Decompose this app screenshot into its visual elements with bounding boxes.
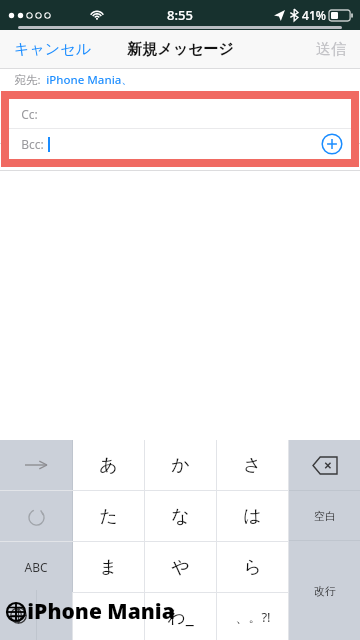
staticText: 41% — [302, 7, 326, 23]
button[interactable]: ABC — [0, 542, 72, 592]
staticText: や — [171, 556, 190, 579]
staticText: 、。?! — [235, 608, 271, 626]
button[interactable]: 、。?! — [217, 593, 288, 640]
staticText: 件名: — [14, 149, 41, 165]
button[interactable]: Add contact — [321, 133, 343, 155]
button[interactable]: Keyboard — [0, 593, 72, 640]
button[interactable]: 空白 — [289, 491, 360, 540]
staticText: Cc: — [21, 106, 38, 122]
staticText: キャンセル — [14, 40, 91, 59]
staticText: 空白 — [314, 509, 336, 523]
button[interactable]: Delete — [289, 440, 360, 490]
staticText: 改行 — [314, 584, 336, 598]
button[interactable]: あ — [73, 440, 144, 490]
button[interactable]: 件名: — [0, 144, 360, 170]
staticText: わ_ — [167, 604, 194, 629]
button[interactable]: な — [145, 491, 216, 541]
staticText: か — [171, 454, 190, 477]
staticText: ま — [99, 556, 118, 579]
button[interactable]: は — [217, 491, 288, 541]
button[interactable]: ら — [217, 542, 288, 592]
staticText: iPhone Mania — [27, 597, 175, 626]
button[interactable] — [0, 440, 72, 490]
staticText: 送信 — [316, 40, 346, 59]
staticText: ABC — [24, 559, 48, 575]
button[interactable]: キャンセル — [0, 30, 105, 68]
staticText: Bcc: — [21, 136, 44, 152]
staticText: 新規メッセージ — [127, 40, 234, 59]
button[interactable] — [73, 593, 144, 640]
staticText: iPhone Mania、 — [46, 72, 133, 88]
button[interactable]: ま — [73, 542, 144, 592]
button[interactable]: 宛先: — [0, 69, 360, 91]
button[interactable]: さ — [217, 440, 288, 490]
staticText: た — [99, 505, 118, 528]
button[interactable]: 送信 — [302, 30, 360, 68]
staticText: な — [171, 505, 190, 528]
staticText: 宛先: — [14, 72, 41, 88]
button[interactable]: や — [145, 542, 216, 592]
button[interactable]: 改行 — [289, 541, 360, 640]
button[interactable]: た — [73, 491, 144, 541]
staticText: あ — [99, 454, 118, 477]
staticText: さ — [243, 454, 262, 477]
button[interactable]: か — [145, 440, 216, 490]
staticText: 8:55 — [167, 6, 193, 24]
button[interactable]: Cc: — [9, 99, 351, 128]
button[interactable]: わ_ — [145, 593, 216, 640]
staticText: ら — [243, 556, 262, 579]
button[interactable]: Bcc: — [9, 129, 351, 159]
button[interactable]: Switch keyboard — [0, 590, 36, 640]
staticText: は — [243, 505, 262, 528]
button[interactable]: Emoji — [36, 590, 72, 640]
button[interactable] — [0, 491, 72, 541]
